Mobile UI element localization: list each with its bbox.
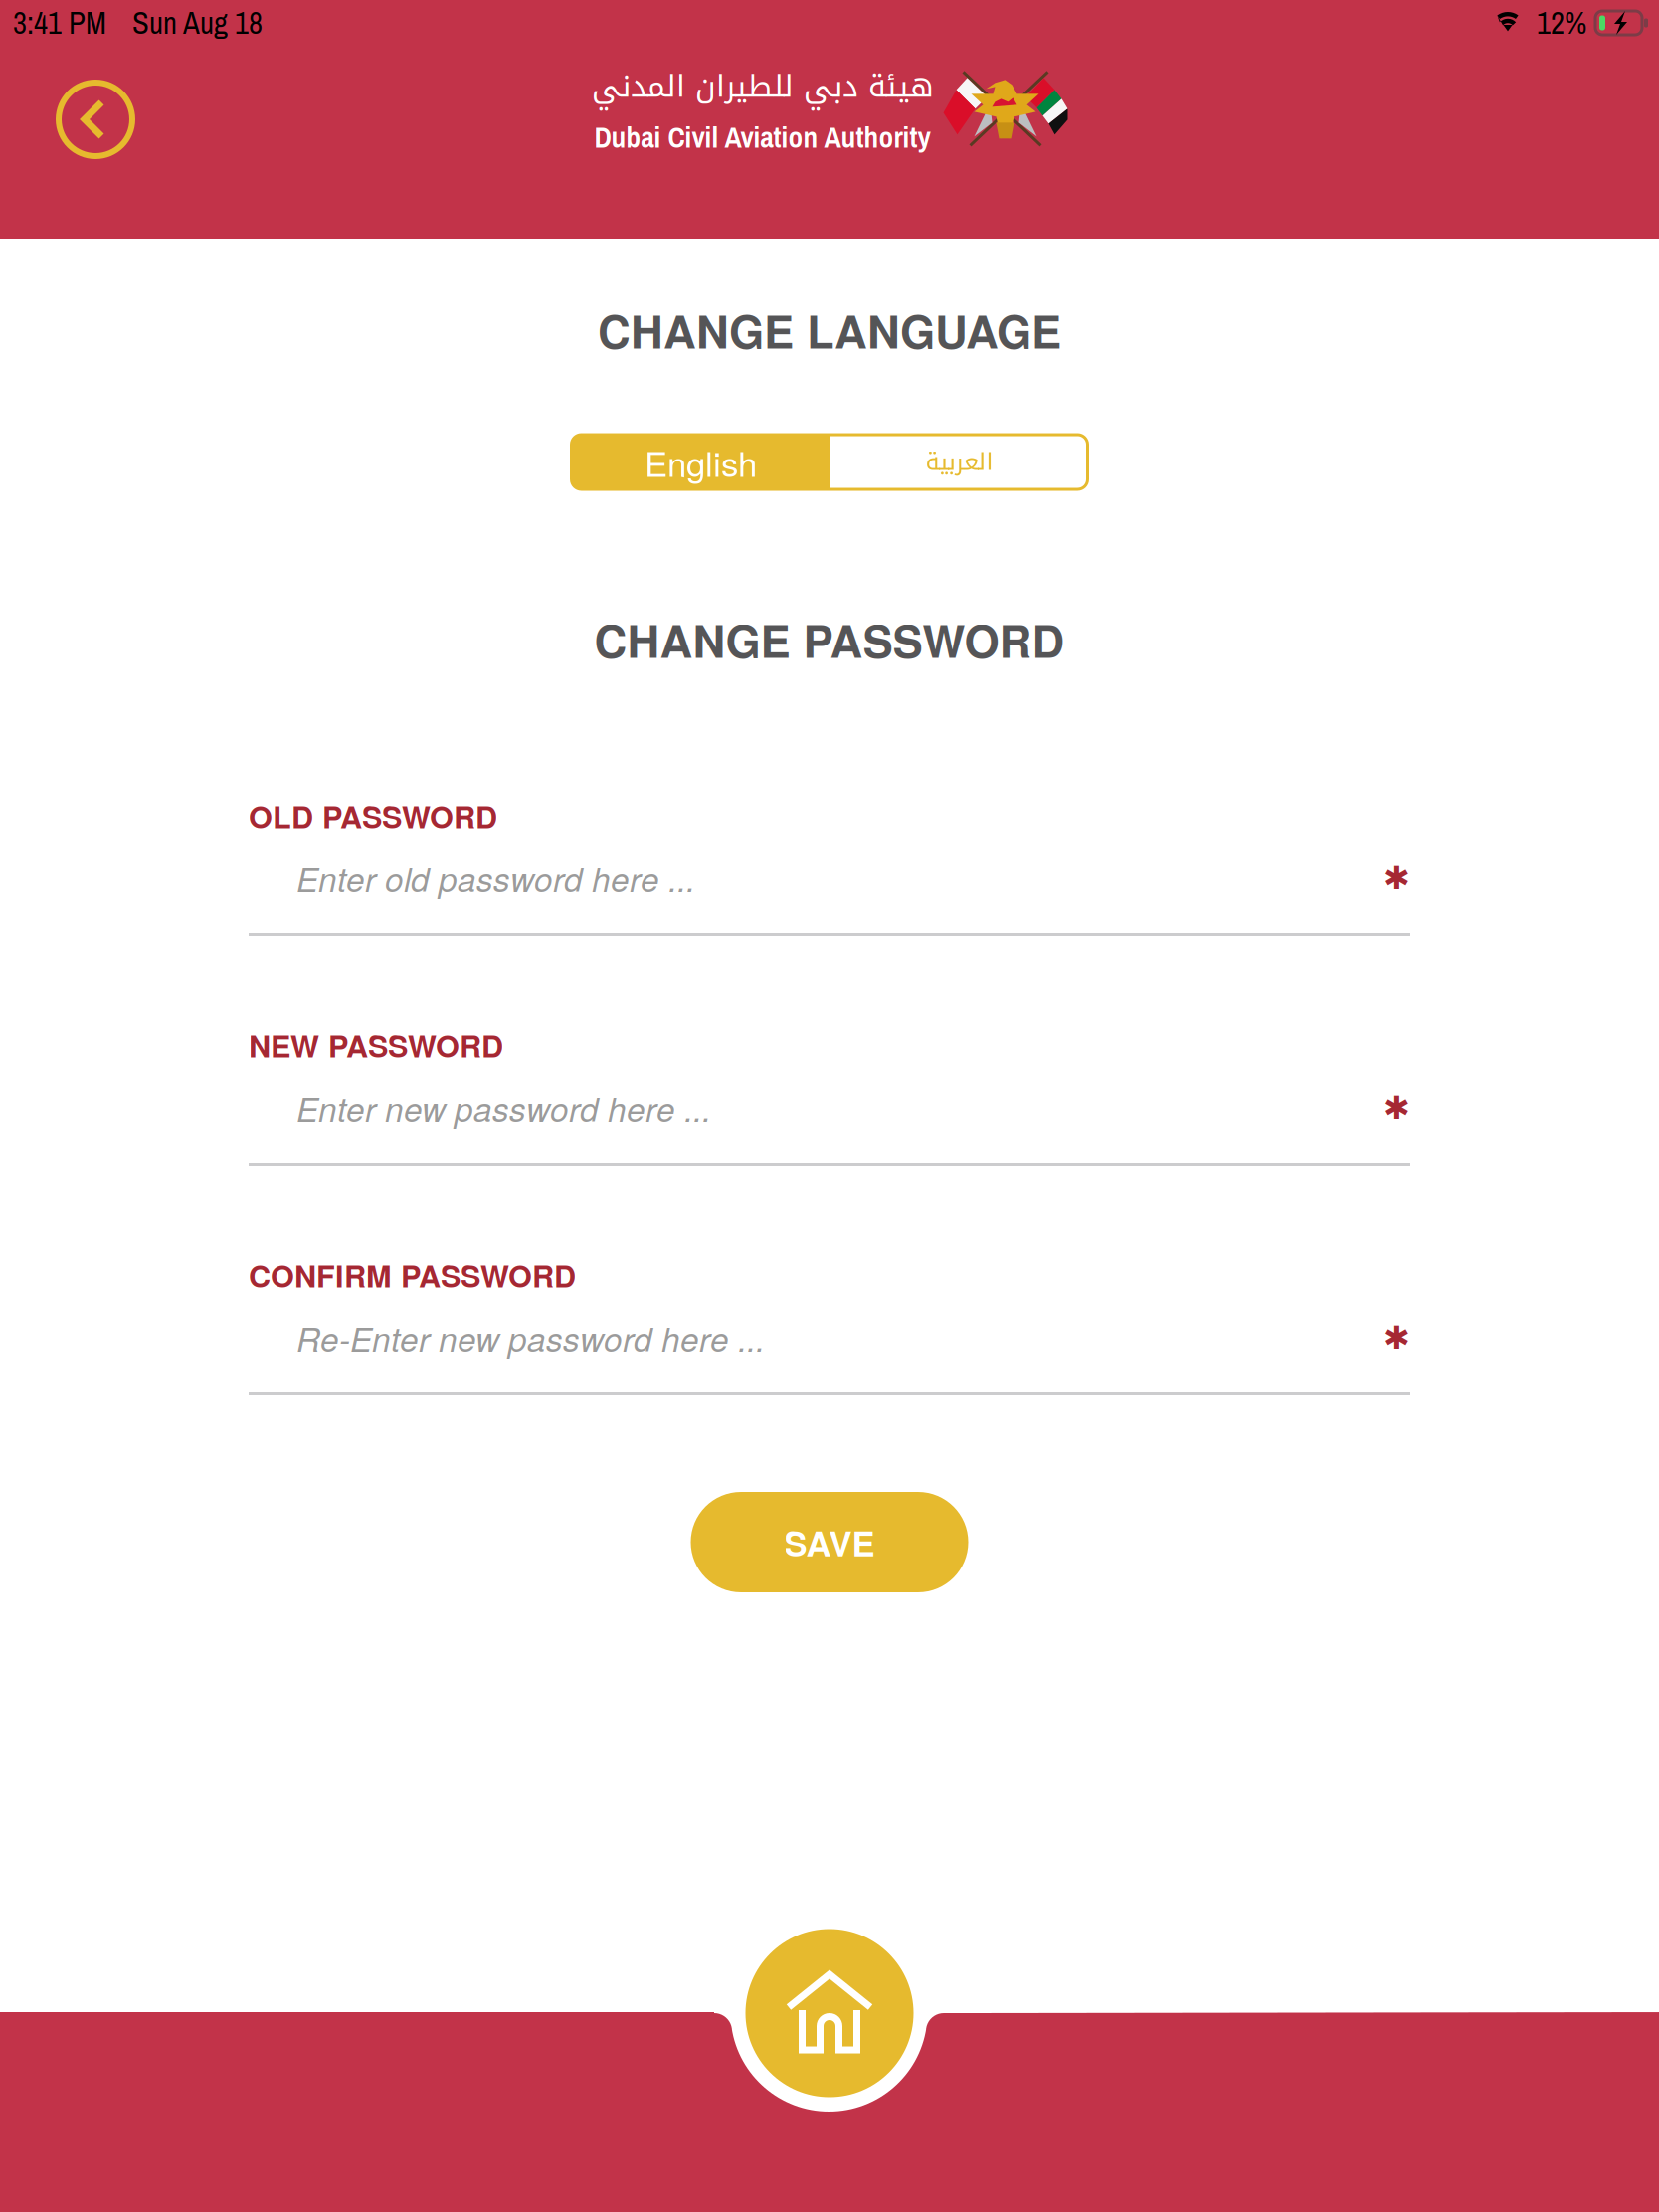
- staticText: SAVE: [784, 1517, 875, 1567]
- staticText: OLD PASSWORD: [249, 794, 497, 837]
- staticText: ✱: [1383, 1089, 1410, 1126]
- staticText: CONFIRM PASSWORD: [249, 1253, 576, 1297]
- staticText: 3:41 PM: [13, 2, 106, 43]
- staticText: Enter new password here ...: [296, 1085, 711, 1131]
- button[interactable]: Home: [735, 1919, 924, 2108]
- staticText: Enter old password here ...: [296, 855, 695, 902]
- button[interactable]: English: [571, 435, 830, 489]
- staticText: Sun Aug 18: [132, 2, 263, 43]
- staticText: Re-Enter new password here ...: [296, 1314, 765, 1361]
- button[interactable]: Back: [48, 72, 143, 167]
- button[interactable]: SAVE: [691, 1492, 968, 1592]
- staticText: CHANGE LANGUAGE: [598, 298, 1061, 362]
- staticText: English: [645, 437, 757, 487]
- staticText: ✱: [1383, 1319, 1410, 1356]
- staticText: ✱: [1383, 860, 1410, 897]
- staticText: 12%: [1537, 2, 1586, 43]
- staticText: هيئة دبي للطيران المدني: [591, 58, 933, 116]
- staticText: NEW PASSWORD: [249, 1023, 503, 1067]
- button[interactable]: العربية: [830, 435, 1088, 489]
- staticText: CHANGE PASSWORD: [594, 607, 1065, 672]
- staticText: Dubai Civil Aviation Authority: [594, 118, 930, 157]
- staticText: العربية: [925, 439, 993, 485]
